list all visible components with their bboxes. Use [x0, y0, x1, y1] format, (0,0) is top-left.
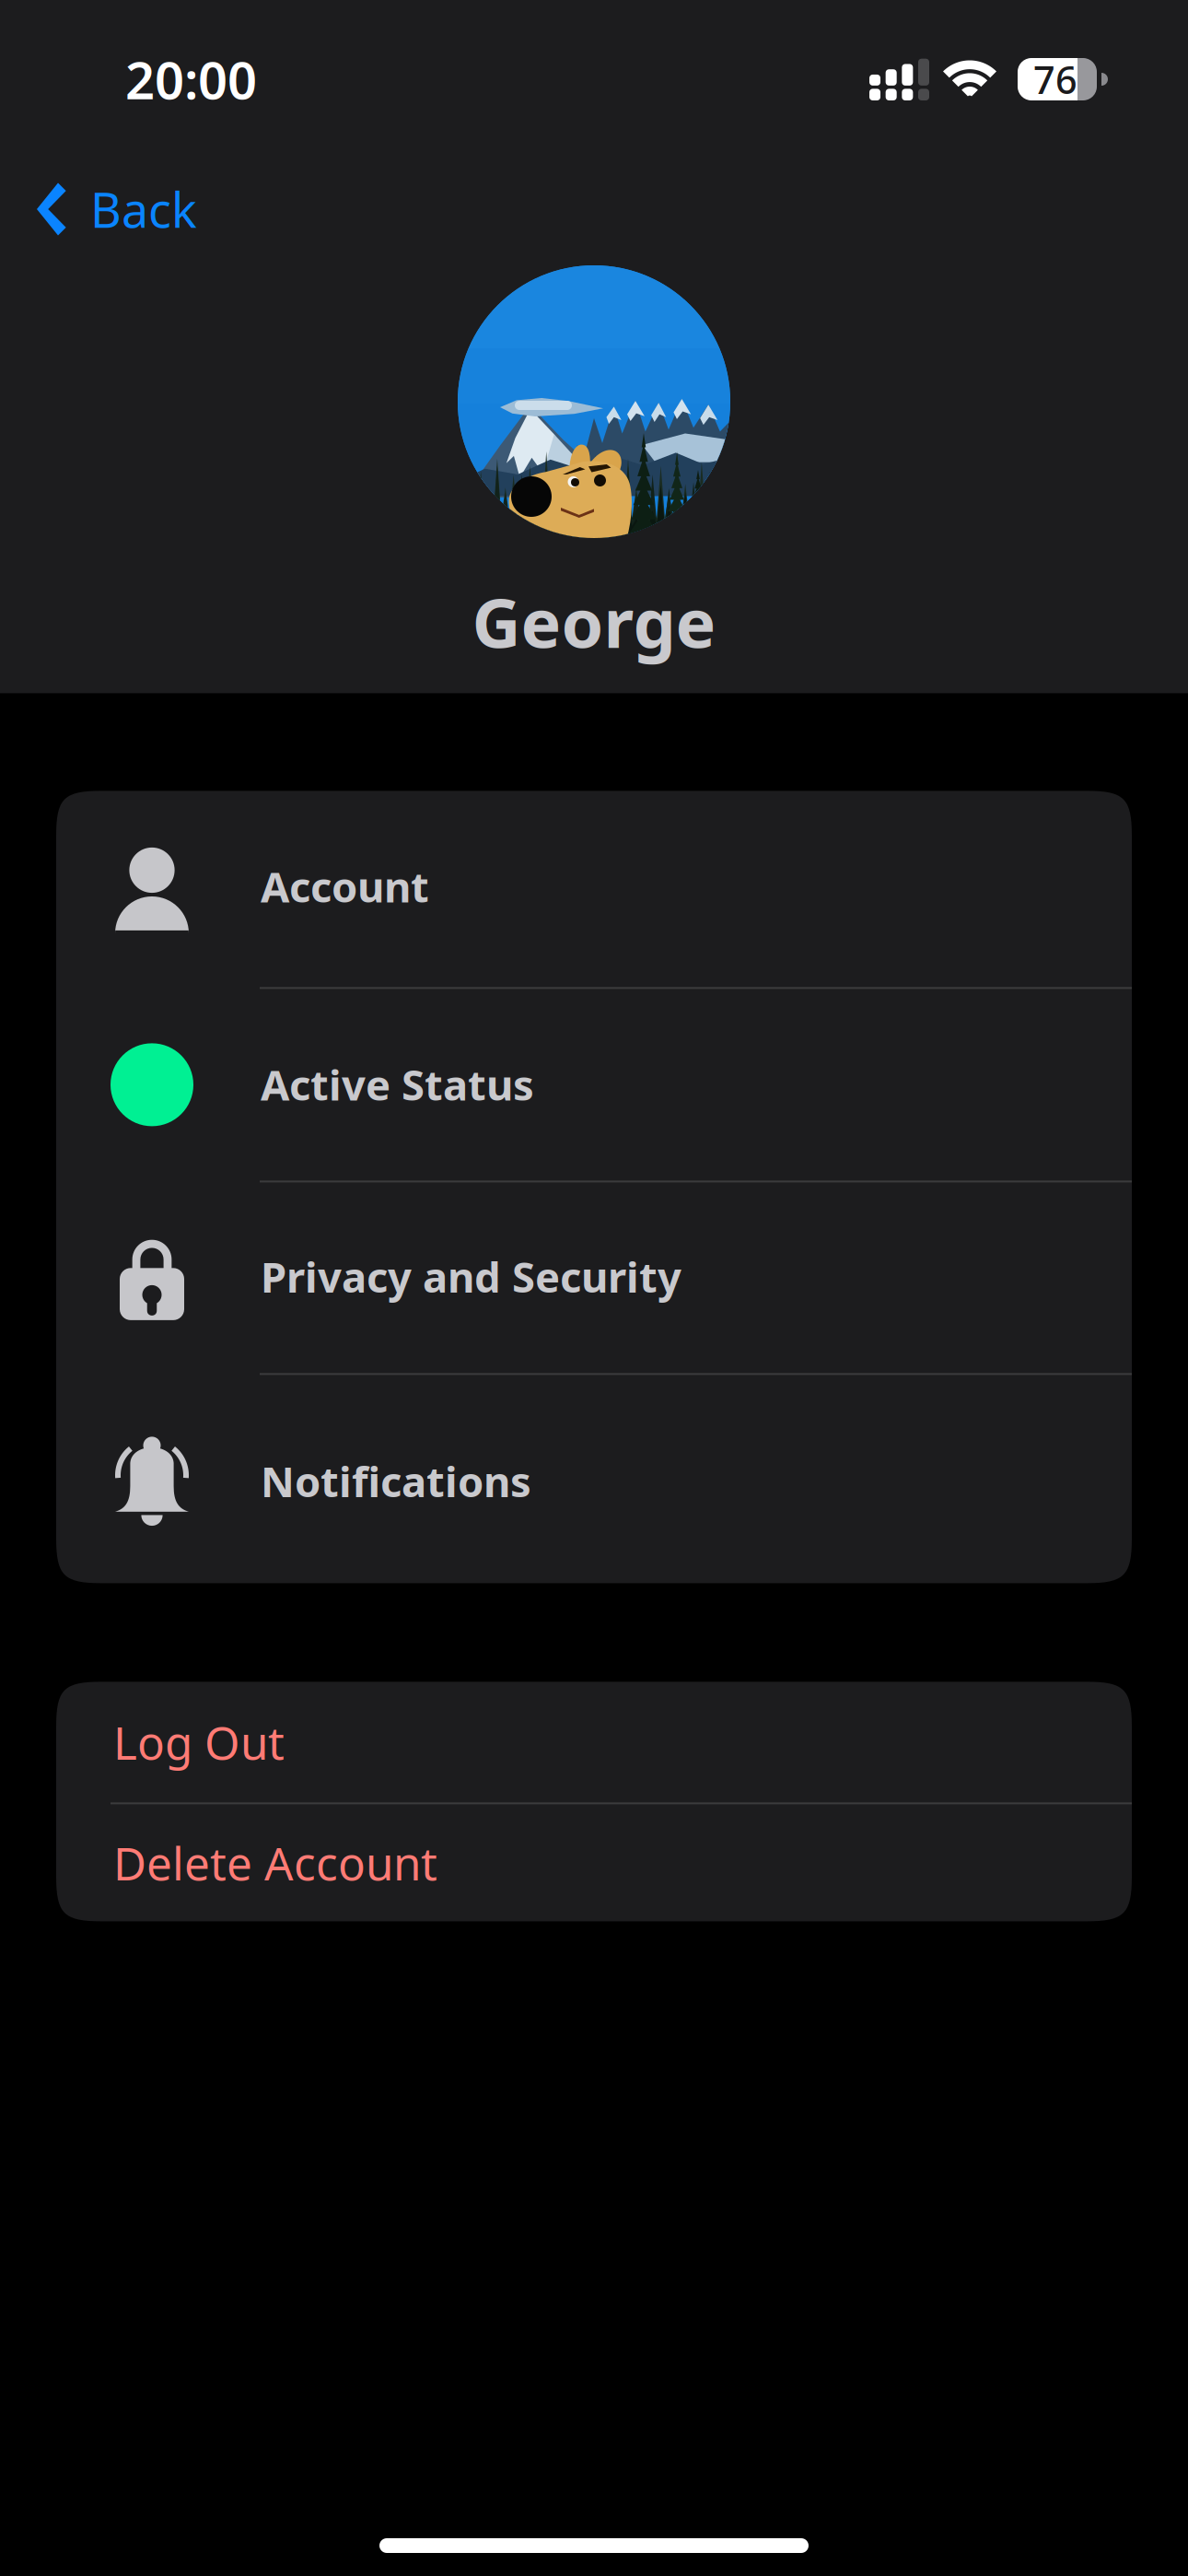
button[interactable]: Log Out: [56, 1682, 1132, 1802]
staticText: Delete Account: [113, 1833, 437, 1893]
button[interactable]: Delete Account: [56, 1804, 1132, 1921]
staticText: Account: [261, 858, 429, 914]
staticText: George: [472, 577, 716, 666]
staticText: Back: [90, 177, 197, 241]
button[interactable]: Back: [0, 158, 219, 260]
staticText: Active Status: [261, 1057, 534, 1112]
button[interactable]: Account: [56, 791, 1132, 987]
staticText: 20:00: [125, 45, 257, 114]
staticText: 76: [1033, 54, 1077, 105]
staticText: Log Out: [113, 1712, 285, 1772]
button[interactable]: Privacy and Security: [56, 1182, 1132, 1373]
staticText: Notifications: [261, 1453, 531, 1509]
button[interactable]: Active Status: [56, 989, 1132, 1181]
button[interactable]: Notifications: [56, 1375, 1132, 1583]
staticText: Privacy and Security: [261, 1249, 681, 1304]
